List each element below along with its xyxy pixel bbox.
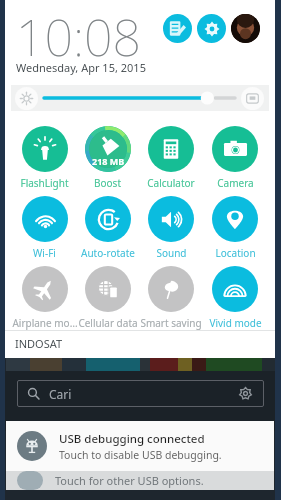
- button[interactable]: Touch for other USB options.: [6, 471, 274, 490]
- button[interactable]: User profile: [231, 14, 260, 43]
- staticText: Vivid mode: [209, 316, 262, 330]
- staticText: Location: [215, 246, 256, 260]
- staticText: FlashLight: [20, 176, 69, 190]
- button[interactable]: Cellular data: [76, 260, 139, 330]
- staticText: Boost: [94, 176, 121, 190]
- button[interactable]: 218 MB: [76, 120, 139, 190]
- staticText: Sound: [156, 246, 187, 260]
- button[interactable]: Sound: [139, 190, 203, 260]
- staticText: Wednesday, Apr 15, 2015: [16, 60, 146, 75]
- button[interactable]: Cari: [17, 380, 264, 407]
- staticText: Camera: [217, 176, 254, 190]
- button[interactable]: Smart saving: [139, 260, 203, 330]
- staticText: 218 MB: [92, 155, 125, 167]
- button[interactable]: Settings: [197, 14, 226, 43]
- button[interactable]: Auto brightness: [15, 87, 38, 110]
- button[interactable]: Calculator: [139, 120, 203, 190]
- staticText: Touch to disable USB debugging.: [59, 448, 222, 462]
- button[interactable]: Edit quick settings: [163, 14, 192, 43]
- staticText: USB debugging connected: [59, 431, 205, 447]
- button[interactable]: Auto brightness settings: [241, 87, 264, 110]
- staticText: Cellular data: [78, 316, 138, 330]
- button[interactable]: Airplane mo…: [13, 260, 76, 330]
- button[interactable]: Wi-Fi: [13, 190, 76, 260]
- staticText: 10:08: [16, 3, 141, 71]
- staticText: Cari: [49, 386, 72, 402]
- staticText: INDOSAT: [15, 336, 63, 351]
- button[interactable]: Auto-rotate: [76, 190, 139, 260]
- staticText: Smart saving: [140, 316, 202, 330]
- button[interactable]: Vivid mode: [203, 260, 267, 330]
- button[interactable]: Location: [203, 190, 267, 260]
- staticText: Calculator: [147, 176, 195, 190]
- staticText: Airplane mo…: [12, 316, 78, 330]
- staticText: Wi-Fi: [33, 246, 56, 260]
- staticText: Auto-rotate: [81, 246, 135, 260]
- button[interactable]: Camera: [203, 120, 267, 190]
- button[interactable]: USB debugging connected: [6, 421, 274, 471]
- staticText: Touch for other USB options.: [55, 473, 204, 488]
- button[interactable]: FlashLight: [13, 120, 76, 190]
